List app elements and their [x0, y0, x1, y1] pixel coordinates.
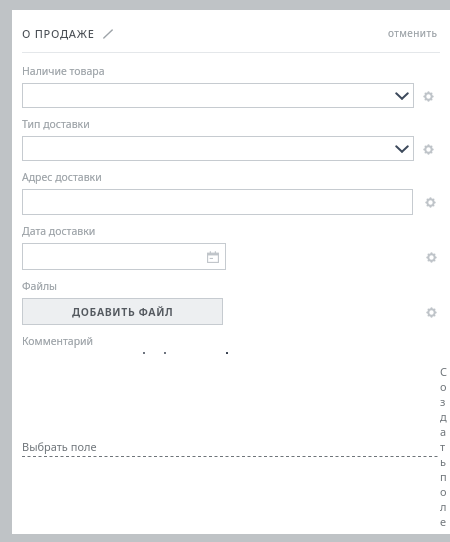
staticText: Выбрать поле	[22, 439, 97, 454]
button[interactable]: Дата доставки	[22, 243, 226, 270]
staticText: Файлы	[22, 279, 58, 293]
button[interactable]: Наличие товара	[22, 83, 414, 108]
button[interactable]: Настройки: Тип доставки	[419, 140, 437, 158]
staticText: Комментарий	[22, 334, 94, 348]
button[interactable]: Настройки: Адрес доставки	[421, 193, 439, 211]
other: Переименовать раздел	[102, 28, 114, 40]
button[interactable]: отменить	[386, 23, 440, 43]
staticText: Наличие товара	[22, 64, 105, 78]
staticText: О ПРОДАЖЕ	[22, 26, 95, 41]
staticText: ДОБАВИТЬ ФАЙЛ	[72, 305, 174, 319]
button[interactable]: Тип доставки	[22, 136, 414, 161]
button[interactable]: Настройки: Файлы	[422, 303, 440, 321]
staticText: отменить	[388, 26, 438, 40]
button[interactable]: Настройки: Дата доставки	[422, 248, 440, 266]
button[interactable]: Адрес доставки	[22, 189, 413, 215]
staticText: Дата доставки	[22, 224, 96, 238]
staticText: Тип доставки	[22, 117, 90, 131]
staticText: Адрес доставки	[22, 170, 102, 184]
button[interactable]: ДОБАВИТЬ ФАЙЛ	[22, 298, 223, 325]
button[interactable]: О ПРОДАЖЕ	[22, 26, 114, 41]
button[interactable]: Настройки: Наличие товара	[419, 87, 437, 105]
button[interactable]: Выбрать поле	[22, 439, 440, 457]
